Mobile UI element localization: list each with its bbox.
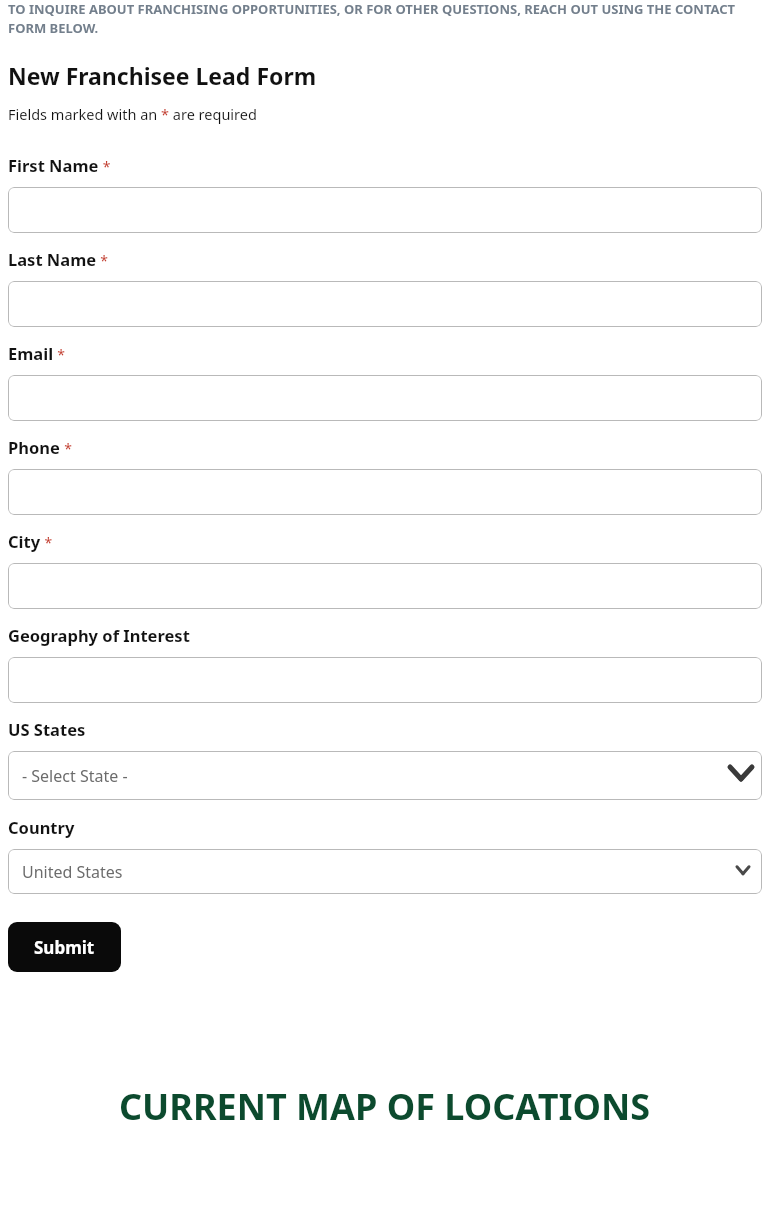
staticText: Phone * xyxy=(8,436,72,458)
staticText: United States xyxy=(22,861,123,883)
staticText: Country xyxy=(8,816,75,838)
staticText: US States xyxy=(8,718,86,740)
button[interactable] xyxy=(8,375,762,421)
button[interactable]: Submit xyxy=(8,922,121,972)
button[interactable] xyxy=(8,281,762,327)
staticText: Geography of Interest xyxy=(8,624,190,646)
button[interactable]: - Select State - xyxy=(8,751,762,800)
staticText: City * xyxy=(8,530,53,552)
button[interactable] xyxy=(8,469,762,515)
staticText: Submit xyxy=(34,936,95,959)
staticText: TO INQUIRE ABOUT FRANCHISING OPPORTUNITI… xyxy=(8,0,762,37)
staticText: CURRENT MAP OF LOCATIONS xyxy=(119,1082,651,1131)
staticText: - Select State - xyxy=(22,765,128,787)
staticText: Email * xyxy=(8,342,66,364)
staticText: Fields marked with an * are required xyxy=(8,104,257,124)
button[interactable]: United States xyxy=(8,849,762,894)
staticText: First Name * xyxy=(8,154,111,176)
staticText: Last Name * xyxy=(8,248,109,270)
button[interactable] xyxy=(8,657,762,703)
staticText: New Franchisee Lead Form xyxy=(8,60,317,91)
button[interactable] xyxy=(8,563,762,609)
button[interactable] xyxy=(8,187,762,233)
